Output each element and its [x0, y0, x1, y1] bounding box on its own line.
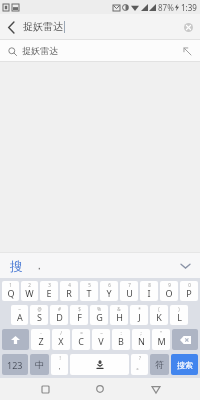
button[interactable]: 0 — [180, 281, 198, 301]
staticText: D — [56, 311, 63, 323]
staticText: & — [117, 306, 121, 312]
staticText: 符 — [155, 359, 164, 370]
button[interactable]: ) — [170, 305, 188, 325]
staticText: 9 — [168, 282, 171, 288]
staticText: 4 — [68, 282, 71, 288]
button[interactable]: = — [72, 329, 90, 350]
staticText: T — [86, 287, 92, 299]
staticText: 3 — [48, 282, 51, 288]
button[interactable]: 7 — [120, 281, 138, 301]
button[interactable]: 8 — [140, 281, 158, 301]
staticText: S — [37, 311, 42, 323]
staticText: 2 — [28, 282, 31, 288]
button[interactable]: 4 — [60, 281, 78, 301]
staticText: 123 — [7, 359, 23, 371]
button[interactable]: 符 — [150, 354, 169, 375]
button[interactable]: 搜 — [10, 258, 23, 274]
button[interactable]: ! — [51, 354, 68, 375]
button[interactable]: @ — [30, 305, 48, 325]
staticText: 6 — [108, 282, 111, 288]
staticText: " — [160, 330, 162, 336]
staticText: L — [177, 311, 182, 323]
button[interactable]: " — [152, 329, 170, 350]
button[interactable]: 1 — [2, 281, 19, 301]
button[interactable]: 5 — [80, 281, 98, 301]
button[interactable]: Home — [89, 378, 111, 400]
button[interactable]: 123 — [2, 354, 28, 375]
button[interactable]: * — [130, 305, 148, 325]
button[interactable]: ; — [132, 329, 150, 350]
staticText: 7 — [128, 282, 131, 288]
staticText: 0 — [188, 282, 191, 288]
button[interactable]: 中 — [30, 354, 49, 375]
button[interactable]: % — [90, 305, 108, 325]
staticText: 捉妖雷达 — [23, 20, 63, 33]
button[interactable]: Clear — [179, 18, 197, 36]
staticText: 1:39 — [181, 2, 197, 13]
staticText: R — [66, 287, 72, 299]
button[interactable]: $ — [70, 305, 88, 325]
staticText: ~ — [18, 306, 21, 312]
staticText: W — [25, 287, 34, 299]
button[interactable]: ~ — [11, 305, 28, 325]
button[interactable]: : — [112, 329, 130, 350]
staticText: 87% — [158, 2, 174, 13]
staticText: V — [98, 335, 104, 347]
staticText: U — [126, 287, 133, 299]
staticText: X — [58, 335, 64, 347]
staticText: Y — [106, 287, 112, 299]
staticText: 搜 — [10, 258, 23, 274]
button[interactable]: Backspace — [172, 329, 198, 350]
button[interactable]: ( — [150, 305, 168, 325]
button[interactable]: 2 — [21, 281, 38, 301]
button[interactable]: Expand candidates — [177, 258, 193, 274]
staticText: @ — [37, 306, 42, 312]
staticText: 1 — [9, 282, 12, 288]
staticText: H — [116, 311, 123, 323]
button[interactable]: 3 — [40, 281, 58, 301]
button[interactable]: ? — [131, 354, 148, 375]
staticText: ， — [56, 362, 63, 371]
button[interactable]: ~ — [92, 329, 110, 350]
button[interactable]: 捉妖雷达 — [0, 40, 200, 61]
staticText: $ — [78, 306, 81, 312]
button[interactable]: Fill search box — [180, 44, 194, 58]
staticText: E — [46, 287, 52, 299]
staticText: F — [77, 311, 82, 323]
staticText: G — [96, 311, 103, 323]
staticText: M — [157, 335, 166, 347]
button[interactable]: 9 — [160, 281, 178, 301]
button[interactable]: # — [50, 305, 68, 325]
button[interactable]: Back — [0, 16, 22, 38]
button[interactable]: / — [52, 329, 70, 350]
staticText: = — [80, 330, 83, 336]
button[interactable]: Recents — [34, 378, 56, 400]
staticText: / — [60, 330, 62, 336]
button[interactable]: & — [110, 305, 128, 325]
staticText: ~ — [100, 330, 103, 336]
staticText: ) — [178, 306, 180, 312]
staticText: 8 — [148, 282, 151, 288]
staticText: % — [97, 306, 101, 312]
staticText: P — [186, 287, 192, 299]
staticText: Z — [38, 335, 44, 347]
staticText: ， — [34, 259, 44, 272]
button[interactable]: 6 — [100, 281, 118, 301]
staticText: J — [138, 311, 141, 323]
staticText: - — [40, 330, 42, 336]
staticText: 5 — [88, 282, 91, 288]
staticText: 搜索 — [177, 360, 193, 370]
button[interactable]: ， — [34, 259, 44, 272]
button[interactable]: Shift — [2, 329, 29, 350]
staticText: Q — [7, 287, 15, 299]
button[interactable]: - — [31, 329, 50, 350]
staticText: K — [156, 311, 162, 323]
button[interactable]: 搜索 — [171, 354, 198, 375]
button[interactable]: Back — [145, 378, 167, 400]
staticText: C — [78, 335, 84, 347]
staticText: N — [138, 335, 145, 347]
staticText: 捉妖雷达 — [22, 45, 58, 56]
button[interactable]: Space, voice input — [70, 354, 129, 375]
staticText: A — [17, 311, 23, 323]
staticText: 中 — [35, 359, 44, 370]
